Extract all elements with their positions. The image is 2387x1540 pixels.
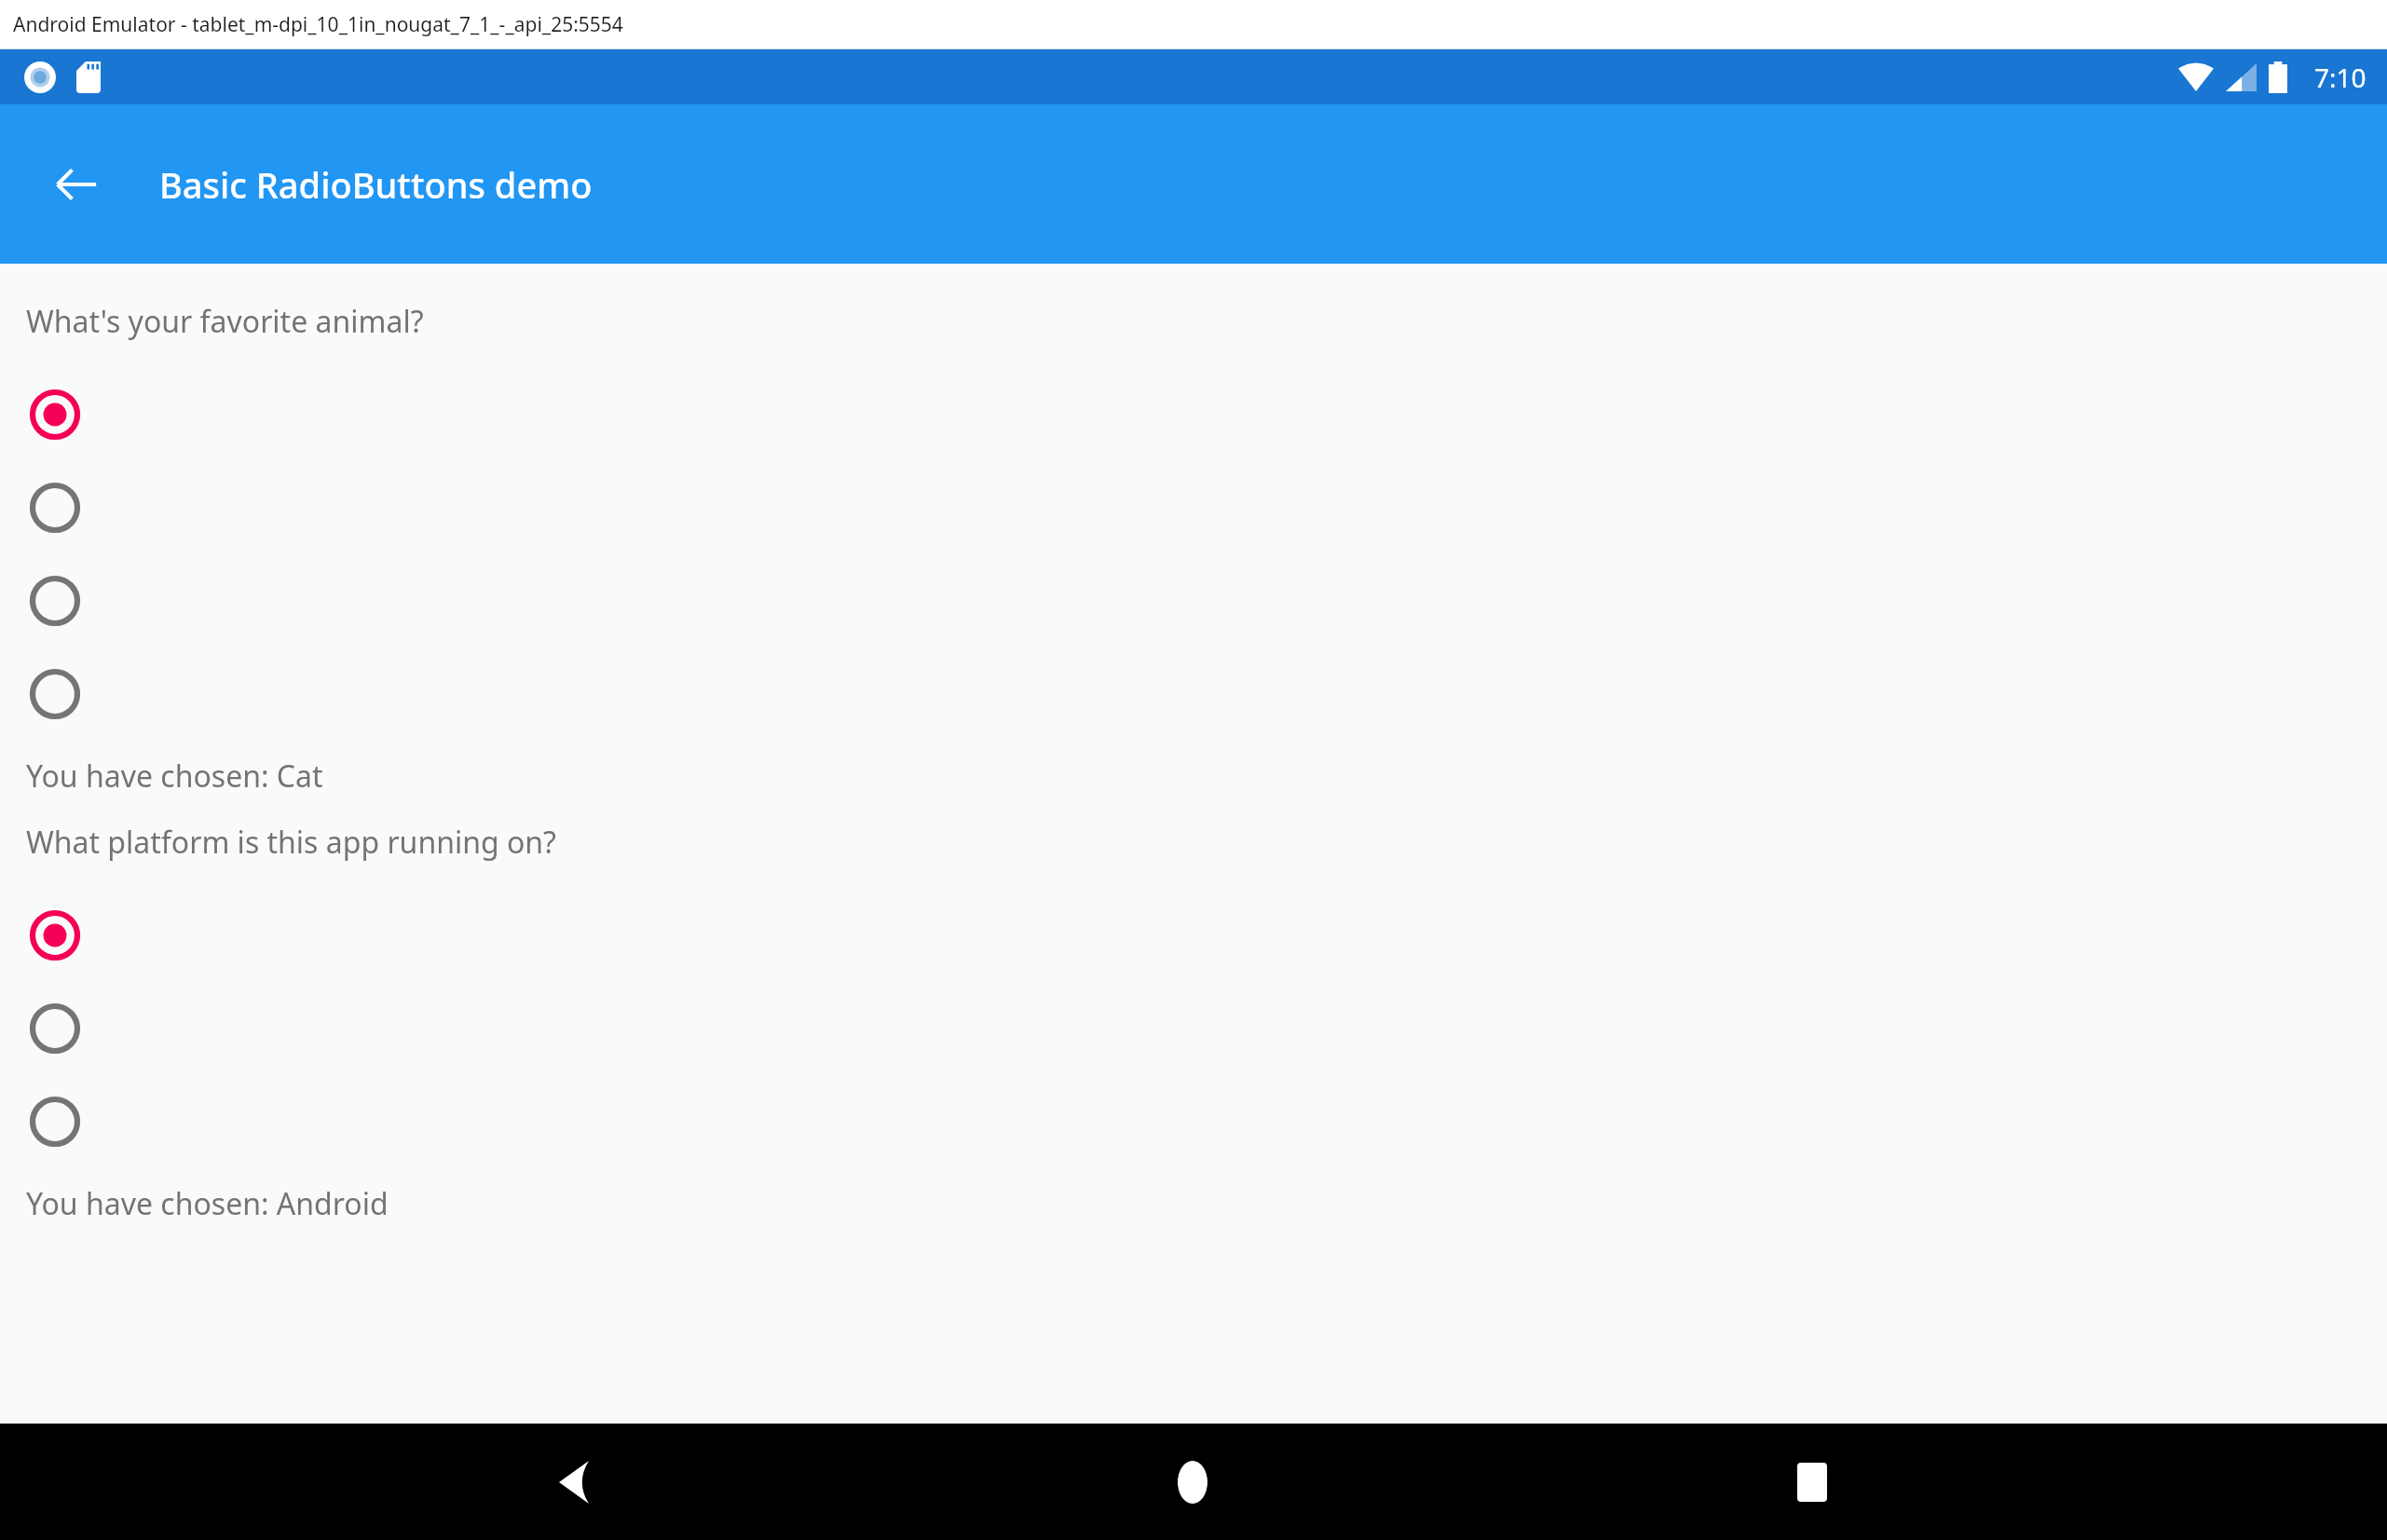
other: Option — [26, 572, 84, 630]
button[interactable]: Navigate up — [47, 155, 106, 214]
button[interactable]: Option — [0, 461, 2387, 554]
button[interactable]: Home — [1148, 1438, 1237, 1527]
button[interactable]: Option — [0, 1075, 2387, 1168]
other: Selected option — [26, 386, 84, 443]
button[interactable]: Option — [0, 982, 2387, 1075]
staticText: Android Emulator - tablet_m-dpi_10_1in_n… — [13, 11, 623, 38]
other: Option — [26, 479, 84, 537]
button[interactable]: Selected option — [0, 368, 2387, 461]
other: Selected option — [26, 906, 84, 964]
staticText: What's your favorite animal? — [26, 301, 424, 342]
button[interactable]: Selected option — [0, 889, 2387, 982]
button[interactable]: Recent apps — [1767, 1438, 1857, 1527]
button[interactable]: Option — [0, 554, 2387, 647]
other: Option — [26, 1093, 84, 1151]
staticText: Basic RadioButtons demo — [159, 160, 593, 209]
staticText: What platform is this app running on? — [26, 822, 556, 863]
staticText: 7:10 — [2314, 60, 2367, 95]
staticText: You have chosen: Android — [26, 1183, 389, 1224]
button[interactable]: Back — [529, 1438, 619, 1527]
other: Option — [26, 1000, 84, 1057]
staticText: You have chosen: Cat — [26, 756, 323, 797]
button[interactable]: Option — [0, 647, 2387, 741]
other: Option — [26, 665, 84, 723]
